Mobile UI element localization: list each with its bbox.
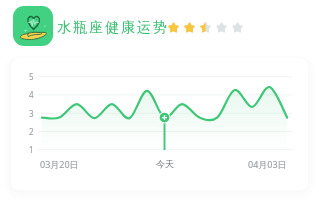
button[interactable]: Rating star 5 (231, 20, 247, 34)
button[interactable]: Rating star 2 (183, 20, 199, 34)
staticText: 2 (29, 126, 34, 137)
staticText: 5 (29, 71, 34, 82)
button[interactable]: Rating star 3 (199, 20, 215, 34)
button[interactable]: Rating star 1 (167, 20, 183, 34)
staticText: 1 (29, 144, 34, 155)
button[interactable] (11, 58, 308, 190)
staticText: 今天 (156, 158, 174, 169)
staticText: 03月20日 (40, 158, 79, 170)
staticText: 水瓶座健康运势 (56, 19, 168, 37)
button[interactable]: Aquarius health fortune icon (13, 6, 53, 46)
staticText: 04月03日 (248, 158, 287, 170)
staticText: 3 (29, 108, 34, 119)
staticText: 4 (29, 89, 34, 100)
button[interactable]: Rating star 4 (215, 20, 231, 34)
